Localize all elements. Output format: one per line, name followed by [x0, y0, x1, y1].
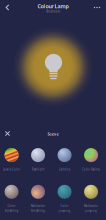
- staticText: Colour Lamp: [37, 3, 68, 10]
- staticText: Jumping: [58, 209, 70, 212]
- staticText: Jumping: [85, 209, 97, 212]
- button[interactable]: Back: [0, 0, 14, 14]
- button[interactable]: Lovely Color: [0, 148, 25, 173]
- button[interactable]: Multicolor: [25, 185, 51, 215]
- button[interactable]: Close: [1, 127, 13, 139]
- button[interactable]: Lighting: [51, 148, 78, 173]
- button[interactable]: Multicolor: [78, 185, 104, 215]
- staticText: Multicolor: [84, 204, 98, 208]
- staticText: Scene: [47, 131, 58, 137]
- staticText: Multicolor: [31, 204, 45, 208]
- button[interactable]: Color: [0, 185, 25, 215]
- button[interactable]: Color Fading: [78, 148, 104, 173]
- staticText: Flashlight: [31, 168, 44, 171]
- button[interactable]: More options: [90, 0, 104, 14]
- button[interactable]: Flashlight: [25, 148, 51, 173]
- staticText: Breathing: [4, 209, 18, 212]
- staticText: Lovely Color: [3, 168, 20, 171]
- button[interactable]: Color: [51, 185, 78, 215]
- staticText: Bedroom: [46, 10, 59, 13]
- staticText: Lighting: [58, 168, 70, 171]
- staticText: Color Fading: [82, 168, 100, 171]
- staticText: Breathing: [31, 209, 45, 212]
- staticText: Color: [7, 204, 15, 208]
- staticText: Color: [60, 204, 68, 208]
